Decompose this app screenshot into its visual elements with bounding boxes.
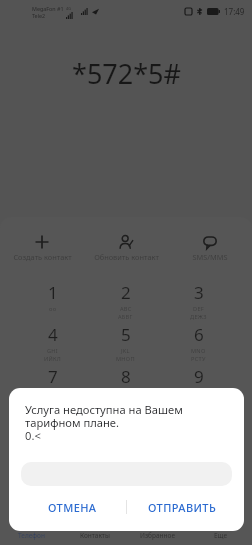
staticText: 1 xyxy=(48,281,58,304)
button[interactable]: ОТПРАВИТЬ xyxy=(127,495,244,519)
staticText: ABC xyxy=(120,305,132,313)
other: Создать контакт xyxy=(35,235,49,249)
button[interactable]: 7 xyxy=(17,365,89,405)
button[interactable]: 1 xyxy=(17,281,89,313)
staticText: MNO xyxy=(191,347,206,355)
other: SMS/MMS xyxy=(203,235,217,249)
staticText: 3 xyxy=(194,281,204,304)
staticText: Еще xyxy=(214,531,228,540)
staticText: Избранное xyxy=(140,531,175,540)
staticText: oo xyxy=(49,305,57,313)
staticText: 4 xyxy=(48,323,58,346)
button[interactable]: 8 xyxy=(89,365,162,405)
staticText: Телефон xyxy=(18,531,45,540)
staticText: МНОП xyxy=(116,355,135,363)
staticText: ДЕЖЗ xyxy=(190,313,207,321)
button[interactable]: Обновить контакт xyxy=(84,233,168,262)
staticText: 9 xyxy=(194,365,204,388)
button[interactable]: 4 xyxy=(17,323,89,363)
button[interactable]: 5 xyxy=(89,323,162,363)
staticText: Обновить контакт xyxy=(94,252,159,262)
button[interactable]: Избранное xyxy=(126,523,189,545)
staticText: SMS/MMS xyxy=(192,252,228,262)
other: Обновить контакт xyxy=(119,235,133,249)
staticText: ОТПРАВИТЬ xyxy=(148,500,217,515)
button[interactable]: ОТМЕНА xyxy=(9,495,126,519)
staticText: Контакты xyxy=(80,531,110,540)
staticText: Создать контакт xyxy=(13,252,72,262)
button[interactable]: 9 xyxy=(162,365,235,405)
staticText: DEF xyxy=(193,305,204,313)
button[interactable]: Телефон xyxy=(0,523,63,545)
staticText: MegaFon #1 xyxy=(32,5,64,12)
staticText: АБВГ xyxy=(118,313,133,321)
button[interactable]: SMS/MMS xyxy=(168,233,252,262)
staticText: ОТМЕНА xyxy=(48,500,97,515)
button[interactable]: Еще xyxy=(189,523,252,545)
staticText: 17:49 xyxy=(224,6,245,17)
button[interactable]: Контакты xyxy=(63,523,126,545)
staticText: РСТУ xyxy=(191,355,206,363)
staticText: 6 xyxy=(194,323,204,346)
staticText: Tele2 xyxy=(32,12,46,19)
button[interactable]: 3 xyxy=(162,281,235,321)
staticText: Услуга недоступна на Вашем тарифном план… xyxy=(25,402,183,444)
button[interactable]: 6 xyxy=(162,323,235,363)
staticText: 8 xyxy=(121,365,131,388)
staticText: ИЙКЛ xyxy=(44,355,62,363)
staticText: JKL xyxy=(121,347,130,355)
staticText: *572*5# xyxy=(72,55,181,85)
staticText: 2 xyxy=(121,281,131,304)
staticText: 7 xyxy=(48,365,58,388)
button[interactable]: 2 xyxy=(89,281,162,321)
staticText: 4G xyxy=(66,6,71,11)
button[interactable]: Создать контакт xyxy=(0,233,84,262)
staticText: 5 xyxy=(121,323,131,346)
staticText: GHI xyxy=(47,347,59,355)
